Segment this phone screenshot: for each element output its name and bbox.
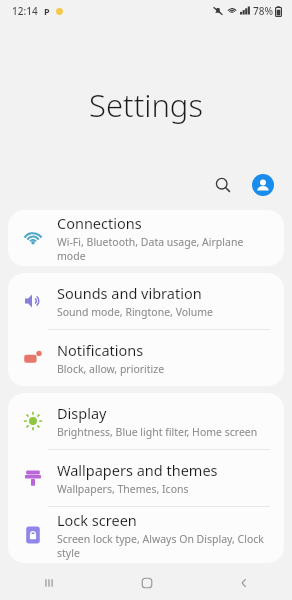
button[interactable]: Home <box>98 566 195 600</box>
staticText: Brightness, Blue light filter, Home scre… <box>57 425 258 439</box>
staticText: Lock screen <box>57 510 137 530</box>
staticText: 78% <box>253 4 273 18</box>
staticText: Display <box>57 403 107 423</box>
staticText: Sound mode, Ringtone, Volume <box>57 305 214 319</box>
staticText: Block, allow, prioritize <box>57 362 165 376</box>
staticText: Notifications <box>57 340 144 360</box>
staticText: Wallpapers and themes <box>57 460 218 480</box>
button[interactable]: Account <box>248 170 278 200</box>
staticText: 12:14 <box>12 4 38 18</box>
button[interactable]: Lock screen <box>8 507 284 563</box>
button[interactable]: Recents <box>0 566 98 600</box>
button[interactable]: Display <box>8 393 284 449</box>
button[interactable]: Search <box>208 170 238 200</box>
button[interactable]: Wallpapers and themes <box>8 450 284 506</box>
staticText: P <box>44 5 50 17</box>
button[interactable]: Back <box>195 566 292 600</box>
button[interactable]: Notifications <box>8 330 284 386</box>
button[interactable]: Sounds and vibration <box>8 273 284 329</box>
staticText: Sounds and vibration <box>57 283 202 303</box>
staticText: Connections <box>57 213 142 233</box>
staticText: Wallpapers, Themes, Icons <box>57 482 189 496</box>
staticText: Screen lock type, Always On Display, Clo… <box>57 532 272 560</box>
staticText: Settings <box>0 84 292 126</box>
button[interactable]: Connections <box>8 210 284 266</box>
staticText: Wi-Fi, Bluetooth, Data usage, Airplane m… <box>57 235 272 263</box>
